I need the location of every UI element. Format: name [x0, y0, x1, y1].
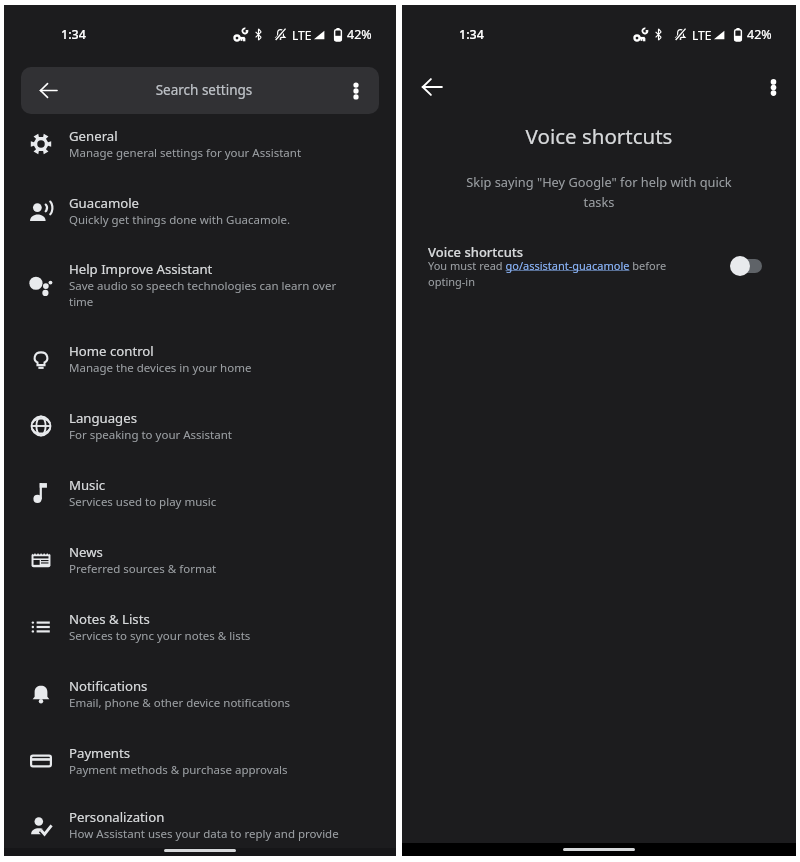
staticText: General: [69, 127, 118, 145]
button[interactable]: Notes & Lists: [4, 593, 396, 660]
staticText: Quickly get things done with Guacamole.: [69, 212, 291, 228]
staticText: News: [69, 543, 103, 561]
staticText: Manage the devices in your home: [69, 360, 252, 376]
staticText: 1:34: [61, 26, 86, 43]
staticText: Payment methods & purchase approvals: [69, 762, 288, 778]
button[interactable]: Back: [410, 65, 454, 109]
staticText: Payments: [69, 744, 131, 762]
staticText: How Assistant uses your data to reply an…: [69, 826, 339, 842]
staticText: Search settings: [72, 81, 336, 99]
staticText: Help Improve Assistant: [69, 260, 213, 278]
button[interactable]: General: [4, 110, 396, 177]
button[interactable]: Guacamole: [4, 177, 396, 244]
button[interactable]: More options: [332, 67, 379, 114]
staticText: Notes & Lists: [69, 610, 150, 628]
button[interactable]: Back: [21, 67, 68, 114]
staticText: LTE: [692, 27, 712, 43]
button[interactable]: News: [4, 526, 396, 593]
staticText: LTE: [292, 27, 312, 43]
staticText: Preferred sources & format: [69, 561, 217, 577]
staticText: 1:34: [459, 26, 484, 43]
staticText: Home control: [69, 342, 154, 360]
staticText: 42%: [747, 26, 772, 43]
button[interactable]: Personalization: [4, 794, 396, 856]
button[interactable]: Payments: [4, 727, 396, 794]
button[interactable]: Back: [21, 67, 379, 114]
staticText: Services used to play music: [69, 494, 217, 510]
staticText: 42%: [347, 26, 372, 43]
button[interactable]: Notifications: [4, 660, 396, 727]
button[interactable]: Help Improve Assistant: [4, 244, 396, 325]
staticText: Skip saying "Hey Google" for help with q…: [458, 173, 740, 211]
staticText: Guacamole: [69, 194, 140, 212]
button[interactable]: Home control: [4, 325, 396, 392]
staticText: Voice shortcuts: [428, 243, 524, 261]
staticText: Voice shortcuts: [402, 122, 796, 150]
staticText: Languages: [69, 409, 137, 427]
staticText: You must read go/assistant-guacamole bef…: [428, 258, 684, 289]
staticText: Services to sync your notes & lists: [69, 628, 251, 644]
staticText: Save audio so speech technologies can le…: [69, 278, 350, 309]
button[interactable]: Languages: [4, 392, 396, 459]
staticText: Personalization: [69, 808, 165, 826]
staticText: Manage general settings for your Assista…: [69, 145, 302, 161]
staticText: Email, phone & other device notification…: [69, 695, 291, 711]
staticText: Music: [69, 476, 106, 494]
staticText: For speaking to your Assistant: [69, 427, 232, 443]
button[interactable]: Voice shortcuts: [428, 243, 762, 292]
button[interactable]: Voice shortcuts toggle: [730, 255, 762, 277]
button[interactable]: Music: [4, 459, 396, 526]
staticText: Notifications: [69, 677, 148, 695]
button[interactable]: More options: [751, 65, 795, 109]
